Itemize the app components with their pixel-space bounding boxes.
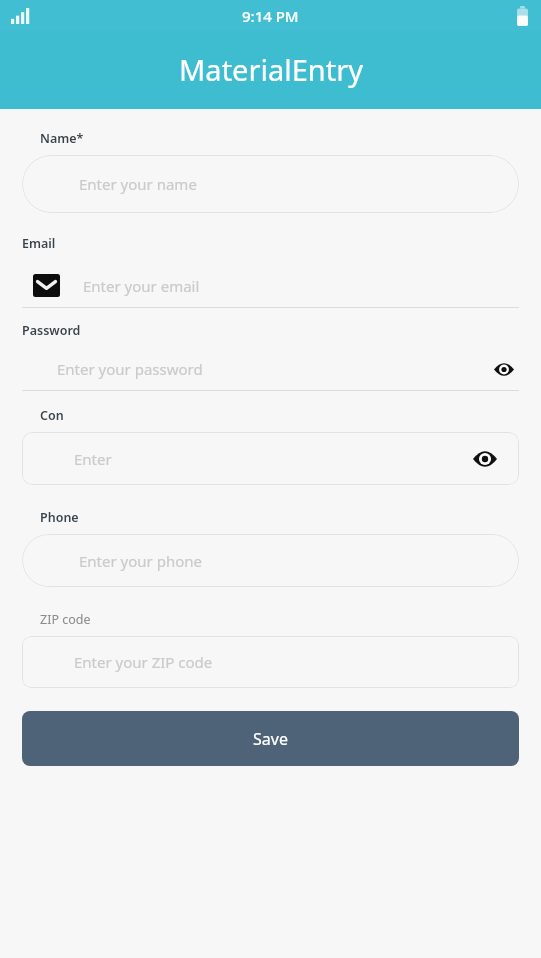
button[interactable]: Save [22,711,519,766]
staticText: Enter [74,449,112,469]
staticText: Email [22,235,56,252]
staticText: Save [253,728,288,750]
staticText: Enter your password [57,359,203,379]
staticText: Enter your name [79,174,197,194]
staticText: Phone [40,509,79,526]
staticText: Password [22,322,81,339]
staticText: MaterialEntry [179,50,363,89]
button[interactable]: Enter your phone [22,534,519,587]
staticText: Enter your ZIP code [74,652,213,672]
staticText: 9:14 PM [242,6,299,26]
staticText: Enter your email [83,276,200,296]
button[interactable]: Enter your ZIP code [22,636,519,688]
staticText: Con [40,407,64,424]
button[interactable]: Enter your password [22,347,519,391]
button[interactable]: Enter [22,432,519,485]
button[interactable]: Enter your name [22,155,519,213]
button[interactable]: Show confirm password [469,443,501,475]
other: Email [33,274,60,297]
staticText: ZIP code [40,611,91,628]
button[interactable]: Email [22,262,519,308]
staticText: Name* [40,130,84,147]
button[interactable]: Show password [489,354,519,384]
staticText: Enter your phone [79,551,202,571]
